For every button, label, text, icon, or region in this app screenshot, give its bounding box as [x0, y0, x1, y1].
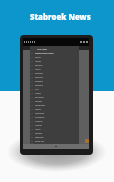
button[interactable]: Education	[30, 95, 79, 99]
button[interactable]: Contact	[30, 123, 79, 127]
staticText: Obituaries	[35, 112, 45, 115]
button[interactable]: Obituaries	[30, 111, 79, 115]
button[interactable]: Stabroek News	[30, 12, 91, 22]
button[interactable]: Settings	[30, 131, 79, 135]
button[interactable]: Feedback	[30, 135, 79, 139]
staticText: Technology	[35, 104, 46, 107]
staticText: Sports	[35, 56, 41, 59]
staticText: Features	[35, 76, 43, 79]
button[interactable]: Sports	[30, 55, 79, 59]
button[interactable]: Health	[30, 91, 79, 95]
staticText: Guyana Times Latest	[35, 52, 54, 55]
button[interactable]: Business	[30, 71, 79, 75]
button[interactable]: Diaspora	[30, 83, 79, 87]
staticText: Local News	[37, 48, 47, 51]
button[interactable]: Privacy	[30, 143, 79, 144]
button[interactable]: Regional	[30, 79, 79, 83]
staticText: Regional	[35, 80, 43, 83]
staticText: Editorial	[35, 64, 43, 67]
staticText: Stabroek News	[30, 12, 91, 22]
button[interactable]: Guyana Times Latest	[30, 51, 79, 55]
staticText: Health	[35, 92, 41, 95]
staticText: Education	[35, 96, 44, 99]
button[interactable]: Classifieds	[30, 115, 79, 119]
staticText: About	[35, 128, 41, 131]
button[interactable]: Letters	[30, 59, 79, 63]
button[interactable]: Opinion	[30, 99, 79, 103]
button[interactable]: Weather	[30, 119, 79, 123]
button[interactable]: Arts	[30, 87, 79, 91]
staticText: Weather	[35, 120, 43, 123]
button[interactable]: Videos	[30, 107, 79, 111]
staticText: Diaspora	[35, 84, 43, 87]
staticText: Business	[35, 72, 43, 75]
staticText: Settings	[35, 132, 43, 135]
staticText: Contact	[35, 124, 42, 127]
staticText: Feedback	[35, 136, 44, 139]
button[interactable]: Editorial	[30, 63, 79, 67]
staticText: Classifieds	[35, 116, 45, 119]
button[interactable]: Features	[30, 75, 79, 79]
staticText: Share App	[35, 140, 45, 143]
staticText: Videos	[35, 108, 41, 111]
staticText: Arts	[35, 88, 39, 91]
staticText: Opinion	[35, 100, 43, 103]
button[interactable]: Local News	[30, 47, 79, 51]
button[interactable]: Share App	[30, 139, 79, 143]
staticText: World	[35, 68, 41, 71]
button[interactable]: World	[30, 67, 79, 71]
button[interactable]: Technology	[30, 103, 79, 107]
staticText: Letters	[35, 60, 42, 63]
button[interactable]: About	[30, 127, 79, 131]
